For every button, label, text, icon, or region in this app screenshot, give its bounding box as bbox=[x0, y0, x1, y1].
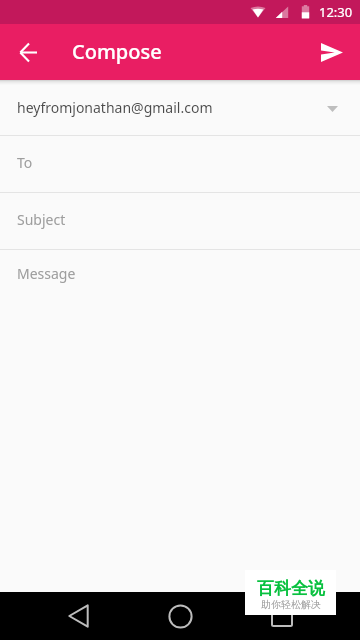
staticText: heyfromjonathan@gmail.com bbox=[17, 98, 213, 117]
button[interactable]: Back bbox=[4, 28, 52, 76]
button[interactable]: Subject bbox=[0, 193, 360, 249]
button[interactable]: Back bbox=[54, 592, 102, 640]
button[interactable]: To bbox=[0, 136, 360, 192]
staticText: 助你轻松解决 bbox=[261, 598, 321, 611]
button[interactable]: heyfromjonathan@gmail.com bbox=[0, 80, 360, 135]
staticText: 百科全说 bbox=[257, 578, 325, 599]
button[interactable]: Home bbox=[156, 592, 204, 640]
button[interactable]: Message bbox=[0, 250, 360, 592]
staticText: Subject bbox=[17, 210, 66, 229]
staticText: Compose bbox=[72, 38, 162, 65]
staticText: Message bbox=[17, 264, 76, 283]
button[interactable]: Recents bbox=[258, 592, 306, 640]
staticText: To bbox=[17, 153, 33, 172]
staticText: 12:30 bbox=[319, 3, 353, 21]
button[interactable]: Send bbox=[308, 28, 356, 76]
